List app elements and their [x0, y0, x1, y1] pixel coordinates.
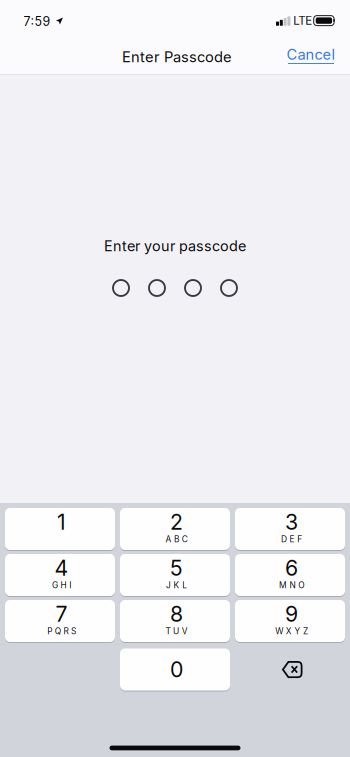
staticText: 4 — [54, 555, 68, 581]
staticText: GHI — [52, 580, 71, 590]
button[interactable]: 7 — [5, 600, 115, 642]
staticText: 9 — [285, 601, 298, 627]
staticText: MNO — [279, 580, 304, 590]
staticText: 2 — [170, 509, 183, 535]
staticText: WXYZ — [275, 626, 308, 636]
staticText: 6 — [285, 555, 298, 581]
button[interactable]: 0 — [120, 648, 230, 690]
staticText: TUV — [165, 626, 188, 636]
staticText: DEF — [281, 534, 302, 544]
button[interactable]: 4 — [5, 554, 115, 596]
button[interactable]: Cancel — [283, 47, 339, 71]
staticText: 1 — [57, 509, 66, 535]
staticText: 7:59 — [24, 14, 51, 29]
button[interactable]: 9 — [235, 600, 345, 642]
staticText: JKL — [166, 580, 187, 590]
button[interactable]: 5 — [120, 554, 230, 596]
button[interactable]: 2 — [120, 508, 230, 550]
staticText: 7 — [55, 601, 67, 627]
button[interactable]: 8 — [120, 600, 230, 642]
staticText: ABC — [165, 534, 188, 544]
button[interactable]: 1 — [5, 508, 115, 550]
button[interactable]: 3 — [235, 508, 345, 550]
staticText: 8 — [170, 601, 183, 627]
staticText: PQRS — [47, 626, 76, 636]
button[interactable]: 6 — [235, 554, 345, 596]
staticText: 3 — [285, 509, 298, 535]
staticText: Cancel — [286, 46, 335, 63]
staticText: 5 — [170, 555, 183, 581]
staticText: 0 — [170, 657, 183, 682]
staticText: LTE — [293, 14, 312, 28]
staticText: Enter your passcode — [104, 237, 246, 255]
staticText: Enter Passcode — [122, 48, 232, 66]
button[interactable]: Delete — [235, 648, 345, 690]
